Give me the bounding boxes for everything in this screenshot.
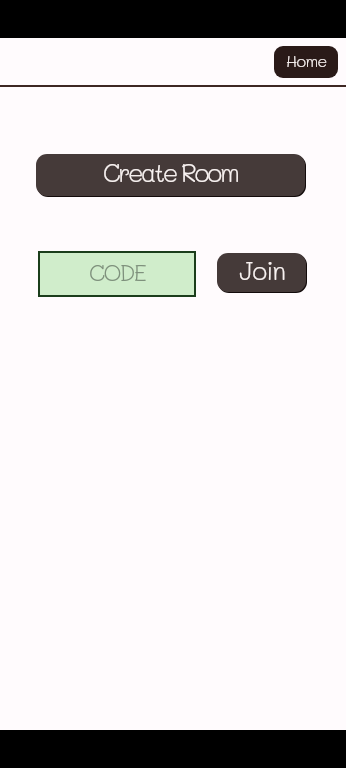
button[interactable]: Home [274, 46, 338, 78]
button[interactable]: CODE [38, 251, 196, 297]
staticText: Home [286, 50, 327, 71]
button[interactable]: Join [217, 253, 306, 292]
staticText: Create Room [103, 156, 238, 188]
staticText: Join [239, 254, 285, 286]
button[interactable]: Create Room [36, 154, 305, 196]
staticText: CODE [89, 257, 146, 287]
